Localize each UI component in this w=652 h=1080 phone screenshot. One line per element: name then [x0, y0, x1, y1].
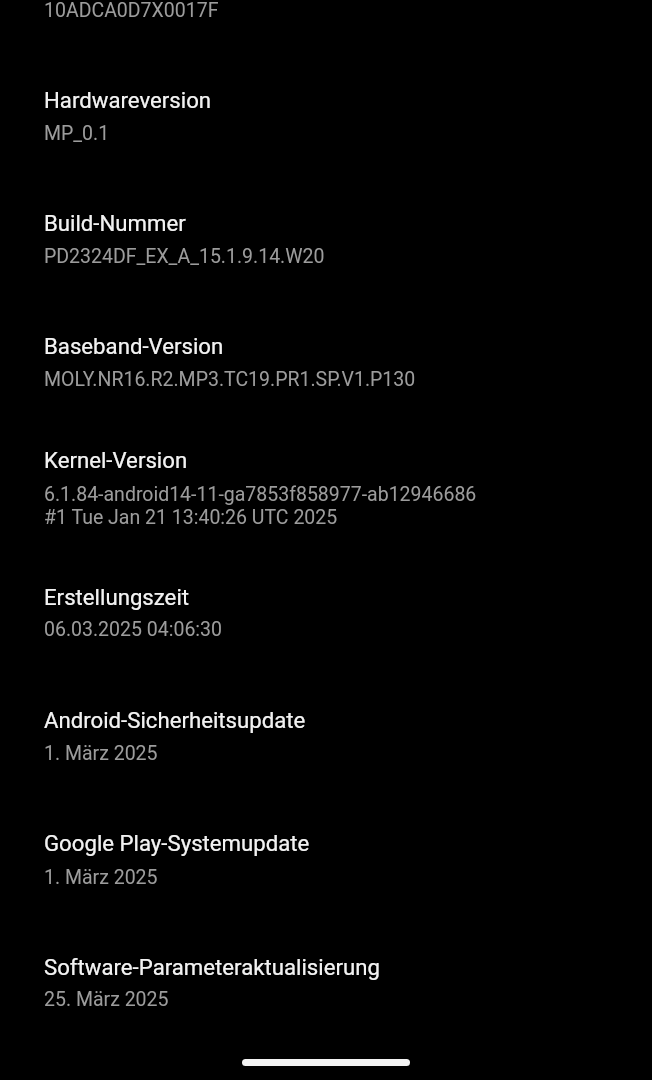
- staticText: 10ADCA0D7X0017F: [44, 0, 219, 22]
- staticText: MP_0.1: [44, 122, 110, 145]
- staticText: PD2324DF_EX_A_15.1.9.14.W20: [44, 245, 325, 268]
- staticText: Google Play-Systemupdate: [44, 830, 310, 856]
- staticText: Hardwareversion: [44, 87, 212, 113]
- staticText: 1. März 2025: [44, 742, 158, 765]
- button[interactable]: Seriennummer: [0, 0, 652, 50]
- staticText: 6.1.84-android14-11-ga7853f858977-ab1294…: [44, 483, 477, 529]
- button[interactable]: Android-Sicherheitsupdate: [0, 665, 652, 788]
- button[interactable]: Build-Nummer: [0, 172, 652, 295]
- staticText: 25. März 2025: [44, 988, 169, 1011]
- staticText: 1. März 2025: [44, 866, 158, 889]
- staticText: Kernel-Version: [44, 447, 188, 473]
- staticText: Software-Parameteraktualisierung: [44, 954, 380, 980]
- staticText: 06.03.2025 04:06:30: [44, 618, 222, 641]
- staticText: Erstellungszeit: [44, 584, 190, 610]
- staticText: MOLY.NR16.R2.MP3.TC19.PR1.SP.V1.P130: [44, 368, 416, 391]
- button[interactable]: Google Play-Systemupdate: [0, 788, 652, 911]
- button[interactable]: Erstellungszeit: [0, 542, 652, 665]
- staticText: Baseband-Version: [44, 333, 224, 359]
- button[interactable]: Baseband-Version: [0, 295, 652, 414]
- button[interactable]: Kernel-Version: [0, 414, 652, 542]
- button[interactable]: Hardwareversion: [0, 50, 652, 172]
- button[interactable]: Software-Parameteraktualisierung: [0, 911, 652, 1034]
- staticText: Android-Sicherheitsupdate: [44, 707, 306, 733]
- staticText: Build-Nummer: [44, 210, 186, 236]
